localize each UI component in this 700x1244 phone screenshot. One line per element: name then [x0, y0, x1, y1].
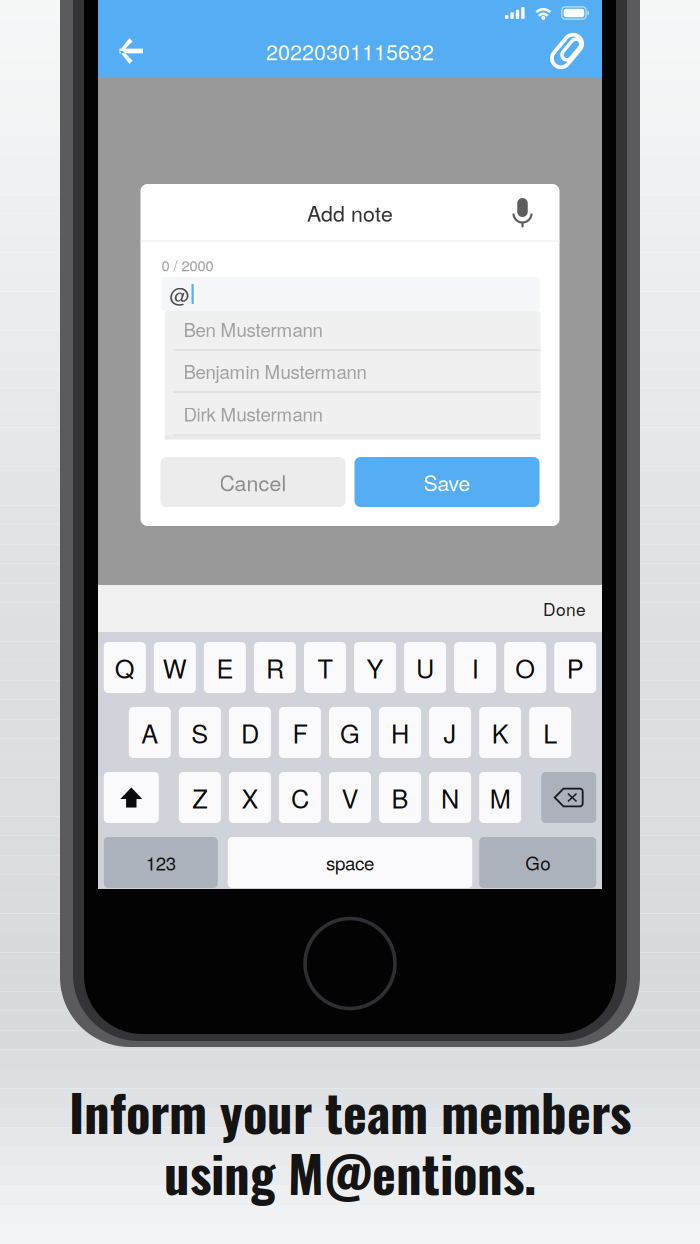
staticText: Z: [192, 779, 207, 816]
button[interactable]: Cancel: [160, 457, 345, 507]
staticText: A: [141, 714, 158, 751]
button[interactable]: X: [229, 772, 271, 823]
button[interactable]: Shift: [104, 772, 159, 823]
staticText: D: [241, 714, 259, 751]
staticText: Go: [525, 849, 550, 876]
staticText: W: [163, 649, 187, 686]
button[interactable]: Attach file: [539, 26, 595, 76]
button[interactable]: Dirk Mustermann: [164, 392, 540, 434]
staticText: Inform your team members: [69, 1073, 631, 1149]
staticText: Save: [423, 467, 470, 497]
staticText: using M@entions.: [164, 1134, 536, 1210]
button[interactable]: C: [279, 772, 321, 823]
staticText: Q: [115, 649, 135, 686]
button[interactable]: E: [204, 642, 246, 693]
button[interactable]: Ben Mustermann: [164, 308, 540, 350]
button[interactable]: U: [404, 642, 446, 693]
staticText: X: [241, 779, 258, 816]
button[interactable]: Z: [179, 772, 221, 823]
staticText: Benjamin Mustermann: [183, 358, 366, 384]
staticText: @: [169, 280, 189, 308]
button[interactable]: Save: [354, 457, 539, 507]
button[interactable]: H: [379, 707, 421, 758]
button[interactable]: O: [504, 642, 546, 693]
button[interactable]: Done: [527, 586, 602, 631]
button[interactable]: Benjamin Mustermann: [164, 350, 540, 392]
staticText: 20220301115632: [266, 36, 434, 66]
staticText: R: [266, 649, 284, 686]
staticText: S: [191, 714, 208, 751]
button[interactable]: Back: [103, 26, 159, 76]
button[interactable]: T: [304, 642, 346, 693]
staticText: I: [472, 649, 479, 686]
button[interactable]: S: [179, 707, 221, 758]
staticText: G: [340, 714, 360, 751]
button[interactable]: Y: [354, 642, 396, 693]
staticText: Y: [366, 649, 383, 686]
staticText: K: [492, 714, 509, 751]
button[interactable]: R: [254, 642, 296, 693]
staticText: 123: [146, 849, 176, 876]
button[interactable]: K: [479, 707, 521, 758]
button[interactable]: A: [129, 707, 171, 758]
staticText: L: [543, 714, 557, 751]
staticText: space: [326, 849, 374, 876]
staticText: Done: [543, 596, 586, 621]
button[interactable]: G: [329, 707, 371, 758]
button[interactable]: B: [379, 772, 421, 823]
button[interactable]: N: [429, 772, 471, 823]
staticText: N: [441, 779, 459, 816]
button[interactable]: Delete: [541, 772, 596, 823]
staticText: 0 / 2000: [161, 254, 213, 275]
button[interactable]: P: [554, 642, 596, 693]
button[interactable]: space: [228, 837, 472, 888]
button[interactable]: Q: [104, 642, 146, 693]
staticText: Dirk Mustermann: [183, 400, 322, 427]
staticText: B: [391, 779, 408, 816]
staticText: H: [391, 714, 409, 751]
staticText: V: [341, 779, 358, 816]
staticText: Ben Mustermann: [183, 316, 322, 342]
button[interactable]: 123: [104, 837, 218, 888]
button[interactable]: I: [454, 642, 496, 693]
staticText: P: [567, 649, 584, 686]
button[interactable]: M: [479, 772, 521, 823]
staticText: F: [292, 714, 307, 751]
button[interactable]: W: [154, 642, 196, 693]
button[interactable]: D: [229, 707, 271, 758]
staticText: C: [291, 779, 309, 816]
button[interactable]: L: [529, 707, 571, 758]
staticText: Add note: [307, 197, 393, 228]
staticText: O: [515, 649, 535, 686]
staticText: J: [444, 714, 457, 751]
staticText: T: [317, 649, 332, 686]
staticText: M: [490, 779, 511, 816]
button[interactable]: F: [279, 707, 321, 758]
staticText: E: [216, 649, 233, 686]
staticText: U: [416, 649, 434, 686]
button[interactable]: J: [429, 707, 471, 758]
staticText: Cancel: [219, 467, 286, 497]
button[interactable]: V: [329, 772, 371, 823]
button[interactable]: Go: [479, 837, 596, 888]
button[interactable]: Dictate: [499, 190, 545, 236]
